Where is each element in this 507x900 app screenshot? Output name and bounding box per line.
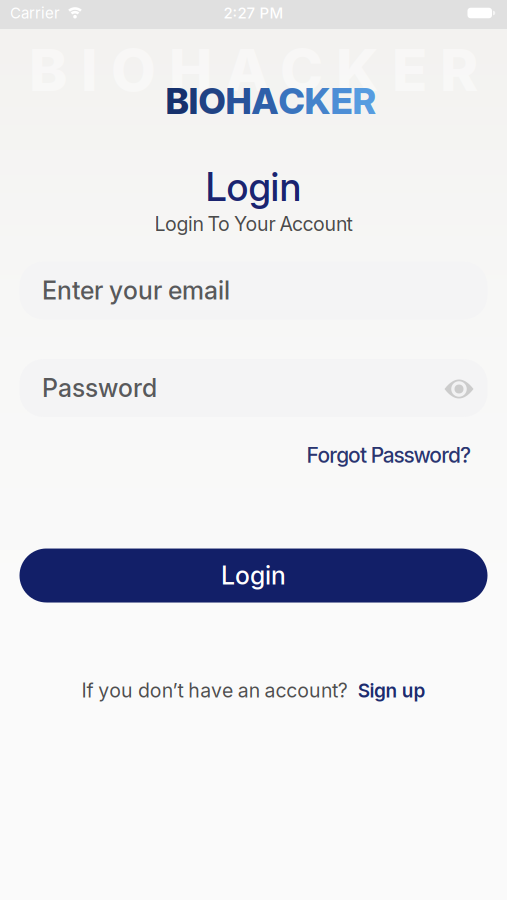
button[interactable]: Password [19, 359, 487, 417]
staticText: E [330, 79, 352, 123]
button[interactable]: Sign up [358, 679, 425, 702]
button[interactable]: Enter your email [19, 261, 487, 319]
button[interactable]: Show password [444, 379, 474, 399]
staticText: O [198, 79, 225, 123]
staticText: B [165, 79, 188, 123]
staticText: Login [221, 560, 286, 591]
staticText: Sign up [358, 679, 425, 702]
staticText: Login [205, 164, 301, 210]
staticText: Enter your email [42, 275, 230, 306]
button[interactable]: Login [19, 548, 487, 602]
staticText: Login To Your Account [154, 212, 352, 236]
staticText: C [278, 79, 304, 123]
staticText: Password [42, 373, 157, 403]
button[interactable]: Forgot Password? [306, 442, 471, 468]
staticText: Forgot Password? [306, 442, 471, 468]
staticText: If you don’t have an account? [82, 679, 348, 702]
staticText: I [188, 79, 198, 123]
staticText: BIOHACKER [29, 35, 478, 105]
staticText: H [225, 79, 251, 123]
staticText: K [304, 79, 330, 123]
staticText: 2:27 PM [223, 4, 283, 22]
staticText: A [251, 79, 278, 123]
staticText: R [352, 79, 376, 123]
staticText: Carrier [10, 4, 60, 22]
